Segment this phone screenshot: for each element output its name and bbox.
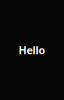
staticText: Hello bbox=[18, 43, 45, 57]
